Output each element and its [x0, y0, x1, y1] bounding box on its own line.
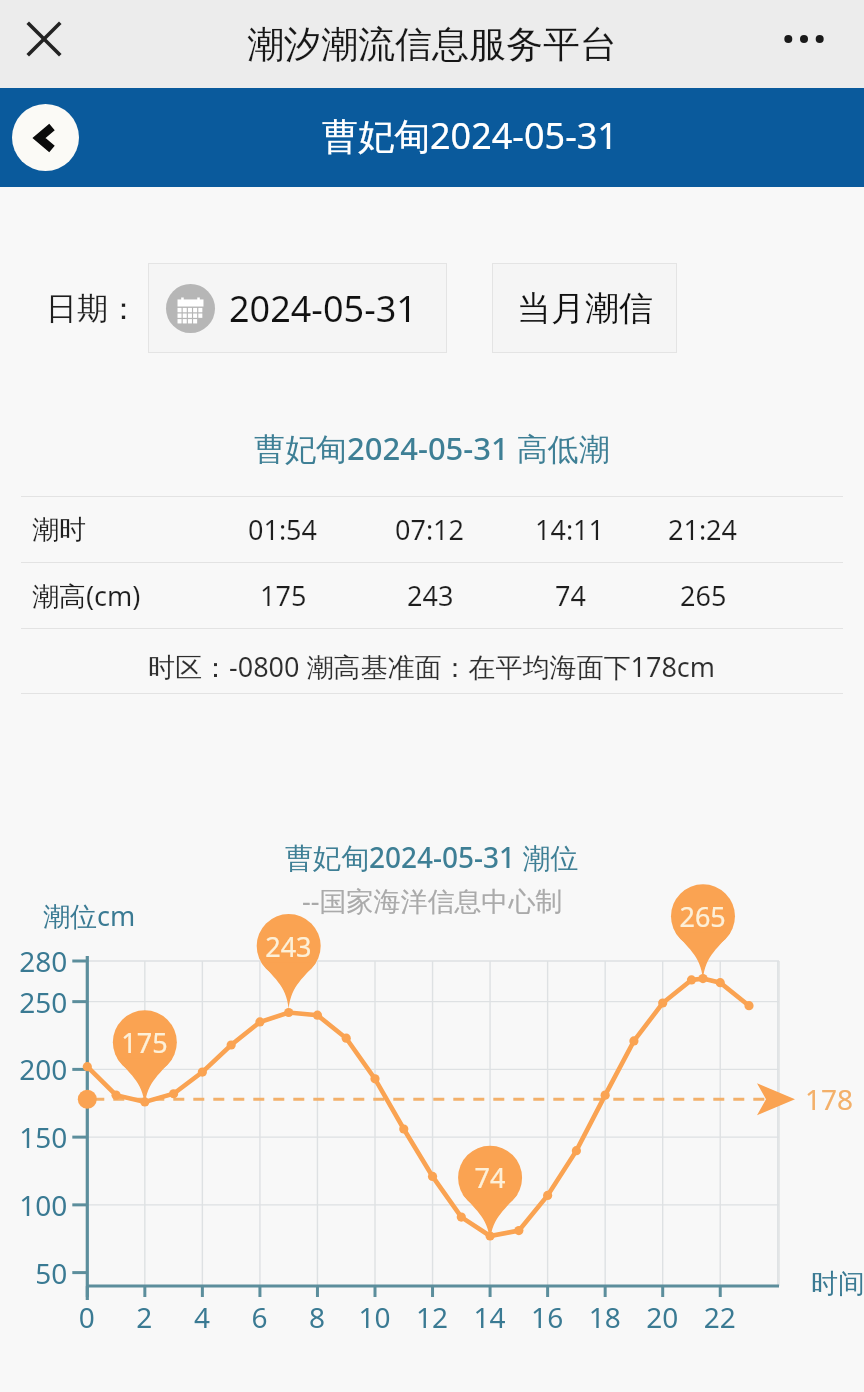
button[interactable]: Close: [16, 11, 72, 67]
staticText: 175: [260, 577, 307, 614]
staticText: 243: [407, 577, 454, 614]
staticText: 曹妃甸2024-05-31 高低潮: [254, 427, 610, 469]
staticText: 07:12: [395, 511, 465, 548]
staticText: 21:24: [668, 511, 738, 548]
button[interactable]: More options: [774, 9, 834, 69]
staticText: 2024-05-31: [229, 284, 417, 333]
staticText: 曹妃甸2024-05-31: [322, 111, 618, 160]
staticText: 01:54: [248, 511, 318, 548]
staticText: 74: [555, 577, 586, 614]
staticText: 潮高(cm): [32, 577, 141, 614]
staticText: 当月潮信: [517, 287, 653, 330]
staticText: 265: [680, 577, 727, 614]
staticText: --国家海洋信息中心制: [302, 882, 563, 919]
button[interactable]: 当月潮信: [492, 263, 677, 353]
staticText: 潮汐潮流信息服务平台: [247, 21, 617, 68]
button[interactable]: Back: [12, 104, 79, 171]
staticText: 14:11: [535, 511, 605, 548]
button[interactable]: 2024-05-31: [148, 263, 447, 353]
staticText: 时区：-0800 潮高基准面：在平均海面下178cm: [148, 648, 716, 685]
staticText: 日期：: [46, 289, 139, 328]
staticText: 潮时: [32, 513, 86, 547]
staticText: 曹妃甸2024-05-31 潮位: [285, 838, 579, 876]
